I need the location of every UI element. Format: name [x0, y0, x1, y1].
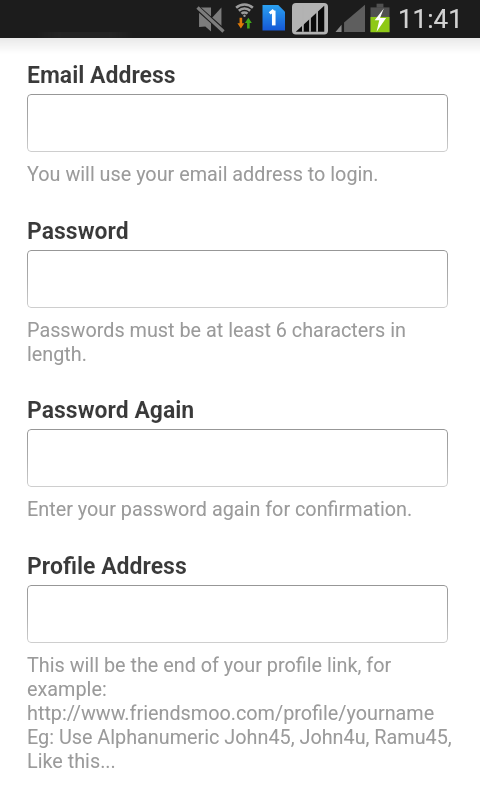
staticText: 11:41 [398, 4, 463, 34]
staticText: Profile Address [27, 553, 187, 580]
button[interactable]: Email Address [27, 94, 448, 152]
staticText: Enter your password again for confirmati… [27, 498, 413, 521]
button[interactable]: Profile Address [27, 585, 448, 643]
staticText: You will use your email address to login… [27, 163, 379, 186]
button[interactable]: Password [27, 250, 448, 308]
staticText: Password [27, 218, 129, 245]
button[interactable]: Password Again [27, 429, 448, 487]
staticText: Email Address [27, 62, 176, 89]
staticText: Password Again [27, 397, 195, 424]
staticText: Passwords must be at least 6 characters … [27, 319, 457, 365]
staticText: This will be the end of your profile lin… [27, 654, 457, 772]
